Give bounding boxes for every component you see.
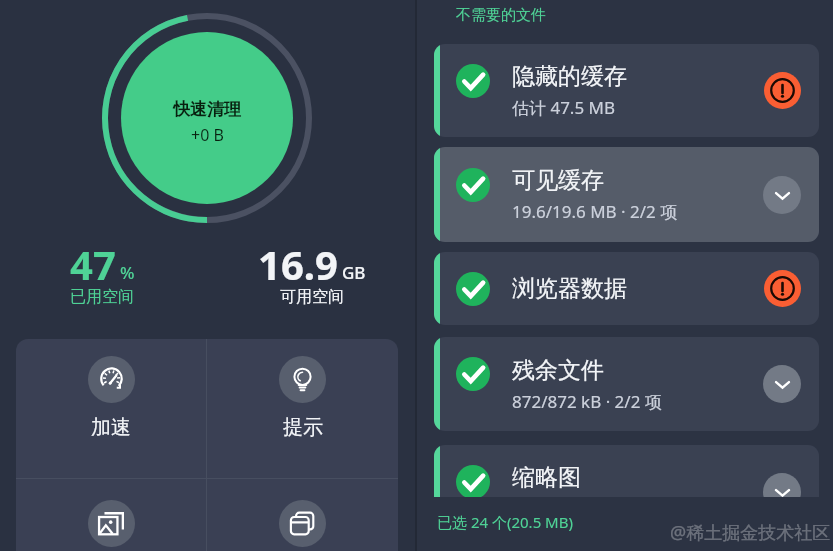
staticText: 可见缓存: [512, 166, 604, 195]
button[interactable]: 可见缓存: [434, 147, 819, 242]
staticText: @稀土掘金技术社区: [670, 520, 831, 545]
button[interactable]: 隐藏的缓存: [434, 44, 819, 137]
button[interactable]: Apps: [207, 479, 398, 551]
staticText: 快速清理: [173, 99, 241, 120]
staticText: 已选 24 个(20.5 MB): [437, 512, 573, 532]
button[interactable]: Photos: [16, 479, 206, 551]
staticText: %: [120, 261, 135, 284]
button[interactable]: 提示: [207, 339, 398, 478]
staticText: 残余文件: [512, 356, 604, 385]
staticText: 隐藏的缓存: [512, 62, 627, 91]
button[interactable]: 缩略图: [434, 445, 819, 497]
staticText: 47: [70, 237, 116, 291]
staticText: 估计 47.5 MB: [512, 96, 616, 119]
staticText: 不需要的文件: [456, 6, 546, 25]
staticText: 16.9: [258, 237, 338, 291]
staticText: 缩略图: [512, 463, 581, 492]
button[interactable]: 浏览器数据: [434, 252, 819, 325]
button[interactable]: Warning: [764, 72, 801, 109]
button[interactable]: 快速清理: [121, 32, 293, 204]
staticText: 提示: [283, 415, 323, 440]
staticText: 872/872 kB · 2/2 项: [512, 390, 662, 413]
staticText: GB: [342, 261, 366, 284]
button[interactable]: Expand: [763, 473, 801, 497]
staticText: 浏览器数据: [512, 274, 627, 303]
button[interactable]: Expand: [763, 176, 801, 214]
button[interactable]: Expand: [763, 365, 801, 403]
button[interactable]: Warning: [764, 270, 801, 307]
staticText: 可用空间: [280, 287, 344, 307]
button[interactable]: 残余文件: [434, 337, 819, 431]
button[interactable]: 加速: [16, 339, 206, 478]
staticText: 已用空间: [70, 287, 134, 307]
staticText: +0 B: [191, 124, 224, 146]
staticText: 19.6/19.6 MB · 2/2 项: [512, 200, 678, 223]
staticText: 加速: [91, 415, 131, 440]
